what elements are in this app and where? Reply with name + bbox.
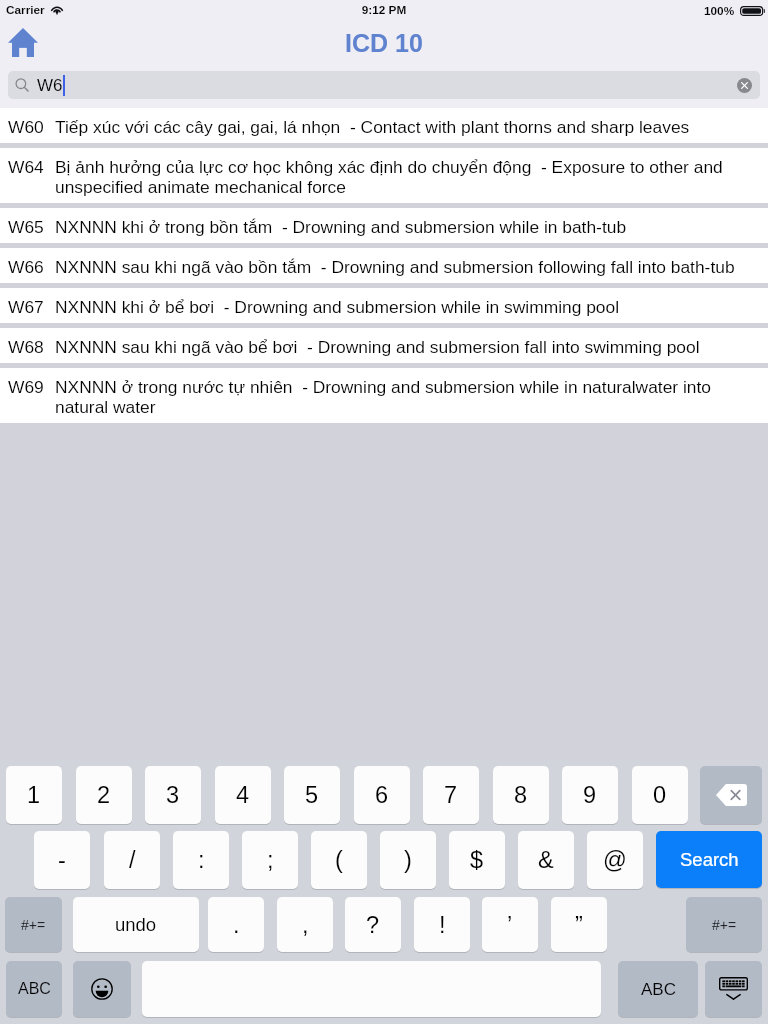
- button[interactable]: W67: [0, 288, 768, 323]
- staticText: &: [538, 847, 554, 873]
- button[interactable]: Backspace: [700, 766, 762, 824]
- button[interactable]: W66: [0, 248, 768, 283]
- staticText: 0: [653, 782, 667, 808]
- staticText: W66: [8, 257, 44, 276]
- staticText: Tiếp xúc với các cây gai, gai, lá nhọn -…: [55, 117, 690, 136]
- button[interactable]: 2: [76, 766, 132, 824]
- staticText: $: [470, 847, 484, 873]
- staticText: Search: [680, 849, 739, 870]
- button[interactable]: ABC: [618, 961, 698, 1017]
- button[interactable]: undo: [73, 897, 199, 952]
- staticText: W69: [8, 377, 44, 396]
- button[interactable]: &: [518, 831, 574, 889]
- staticText: (: [335, 847, 343, 873]
- staticText: 3: [166, 782, 180, 808]
- button[interactable]: 0: [632, 766, 688, 824]
- staticText: 4: [236, 782, 250, 808]
- button[interactable]: Home: [4, 23, 42, 61]
- button[interactable]: 9: [562, 766, 618, 824]
- button[interactable]: /: [104, 831, 160, 889]
- staticText: 9: [583, 782, 597, 808]
- staticText: -: [58, 847, 66, 873]
- staticText: 5: [305, 782, 319, 808]
- staticText: NXNNN khi ở bể bơi - Drowning and submer…: [55, 297, 620, 316]
- staticText: :: [198, 847, 205, 873]
- staticText: undo: [115, 914, 157, 935]
- button[interactable]: #+=: [686, 897, 762, 952]
- staticText: ): [404, 847, 412, 873]
- staticText: 100%: [704, 4, 735, 17]
- staticText: ,: [302, 912, 309, 938]
- staticText: W67: [8, 297, 44, 316]
- staticText: W68: [8, 337, 44, 356]
- button[interactable]: ’: [482, 897, 538, 952]
- button[interactable]: ?: [345, 897, 401, 952]
- button[interactable]: 3: [145, 766, 201, 824]
- staticText: ’: [507, 912, 513, 938]
- staticText: Bị ảnh hưởng của lực cơ học không xác đị…: [55, 157, 758, 197]
- button[interactable]: ): [380, 831, 436, 889]
- staticText: @: [603, 847, 627, 873]
- button[interactable]: -: [34, 831, 90, 889]
- staticText: ICD 10: [0, 29, 768, 57]
- staticText: W64: [8, 157, 44, 176]
- button[interactable]: 1: [6, 766, 62, 824]
- button[interactable]: $: [449, 831, 505, 889]
- staticText: W65: [8, 217, 44, 236]
- button[interactable]: 7: [423, 766, 479, 824]
- staticText: NXNNN khi ở trong bồn tắm - Drowning and…: [55, 217, 627, 236]
- staticText: .: [233, 912, 240, 938]
- button[interactable]: 4: [215, 766, 271, 824]
- staticText: /: [129, 847, 136, 873]
- button[interactable]: #+=: [5, 897, 62, 952]
- staticText: !: [439, 912, 446, 938]
- button[interactable]: Emoji: [73, 961, 131, 1017]
- button[interactable]: Hide keyboard: [705, 961, 762, 1017]
- button[interactable]: 6: [354, 766, 410, 824]
- staticText: #+=: [712, 917, 737, 933]
- staticText: NXNNN sau khi ngã vào bể bơi - Drowning …: [55, 337, 700, 356]
- staticText: 9:12 PM: [0, 3, 768, 16]
- button[interactable]: !: [414, 897, 470, 952]
- staticText: #+=: [21, 917, 46, 933]
- staticText: 1: [27, 782, 41, 808]
- button[interactable]: W60: [0, 108, 768, 143]
- button[interactable]: W6: [8, 71, 760, 99]
- button[interactable]: ;: [242, 831, 298, 889]
- button[interactable]: W69: [0, 368, 768, 423]
- button[interactable]: W68: [0, 328, 768, 363]
- staticText: 8: [514, 782, 528, 808]
- staticText: NXNNN ở trong nước tự nhiên - Drowning a…: [55, 377, 758, 417]
- button[interactable]: .: [208, 897, 264, 952]
- staticText: NXNNN sau khi ngã vào bồn tắm - Drowning…: [55, 257, 735, 276]
- button[interactable]: W64: [0, 148, 768, 203]
- staticText: ”: [575, 912, 583, 938]
- staticText: ?: [366, 912, 380, 938]
- button[interactable]: Search: [656, 831, 762, 888]
- button[interactable]: :: [173, 831, 229, 889]
- button[interactable]: W65: [0, 208, 768, 243]
- staticText: 7: [444, 782, 458, 808]
- staticText: Carrier: [6, 3, 45, 16]
- button[interactable]: 8: [493, 766, 549, 824]
- button[interactable]: ”: [551, 897, 607, 952]
- button[interactable]: ABC: [6, 961, 62, 1017]
- button[interactable]: 5: [284, 766, 340, 824]
- staticText: ;: [267, 847, 274, 873]
- button[interactable]: (: [311, 831, 367, 889]
- staticText: W6: [37, 76, 63, 95]
- button[interactable]: Clear search: [737, 78, 752, 93]
- staticText: ABC: [18, 980, 51, 998]
- staticText: ABC: [641, 980, 676, 999]
- staticText: 2: [97, 782, 111, 808]
- button[interactable]: @: [587, 831, 643, 889]
- button[interactable]: ,: [277, 897, 333, 952]
- staticText: 6: [375, 782, 389, 808]
- staticText: W60: [8, 117, 44, 136]
